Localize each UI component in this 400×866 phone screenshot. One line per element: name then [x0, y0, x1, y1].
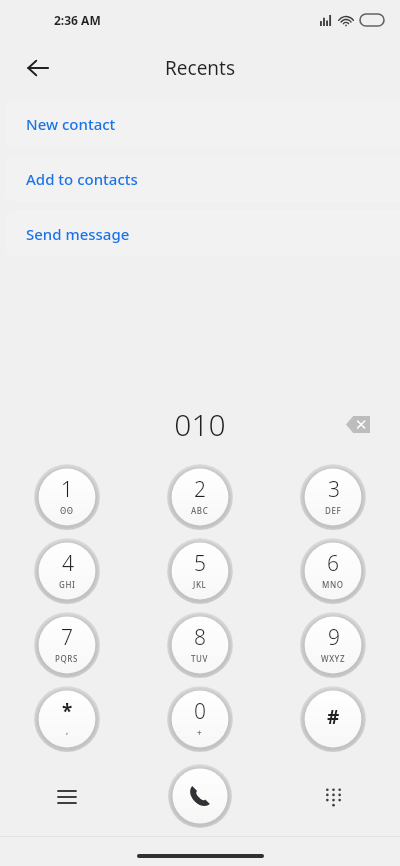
staticText: Send message [26, 224, 130, 244]
button[interactable]: Back [14, 44, 62, 92]
staticText: PQRS [55, 653, 79, 664]
staticText: + [197, 727, 203, 738]
button[interactable]: 8 [167, 612, 233, 678]
staticText: TUV [191, 653, 209, 664]
button[interactable]: 7 [34, 612, 100, 678]
staticText: 2:36 AM [54, 12, 101, 28]
button[interactable]: 5 [167, 538, 233, 604]
staticText: # [327, 704, 340, 730]
staticText: 010 [174, 404, 226, 445]
button[interactable]: 9 [300, 612, 366, 678]
staticText: 9 [328, 623, 340, 652]
staticText: 2 [194, 475, 206, 504]
staticText: * [62, 698, 73, 724]
staticText: 5 [194, 549, 206, 578]
staticText: Add to contacts [26, 169, 138, 189]
button[interactable]: # [300, 686, 366, 752]
staticText: MNO [322, 579, 344, 590]
button[interactable]: 4 [34, 538, 100, 604]
staticText: 0 [194, 697, 206, 726]
button[interactable]: * [34, 686, 100, 752]
button[interactable]: Send message [5, 210, 400, 257]
staticText: DEF [325, 505, 342, 516]
staticText: Recents [165, 55, 236, 81]
staticText: 1 [61, 475, 73, 504]
staticText: , [66, 725, 69, 736]
button[interactable]: 0 [167, 686, 233, 752]
button[interactable]: Add to contacts [5, 155, 400, 202]
staticText: 8 [194, 623, 206, 652]
button[interactable]: 2 [167, 464, 233, 530]
staticText: 3 [328, 475, 340, 504]
staticText: JKL [193, 579, 207, 590]
staticText: WXYZ [321, 653, 346, 664]
staticText: ABC [191, 505, 209, 516]
button[interactable]: Dialpad [309, 773, 357, 821]
staticText: 4 [62, 549, 74, 578]
button[interactable]: Call [168, 764, 232, 828]
button[interactable]: 1 [34, 464, 100, 530]
staticText: 6 [327, 549, 339, 578]
staticText: GHI [59, 579, 76, 590]
staticText: New contact [26, 114, 116, 134]
button[interactable]: 3 [300, 464, 366, 530]
button[interactable]: 6 [300, 538, 366, 604]
button[interactable]: Backspace [338, 404, 378, 444]
button[interactable]: New contact [5, 100, 400, 147]
staticText: 7 [61, 623, 73, 652]
staticText: ʘʘ [60, 505, 74, 516]
button[interactable]: Call history menu [43, 773, 91, 821]
